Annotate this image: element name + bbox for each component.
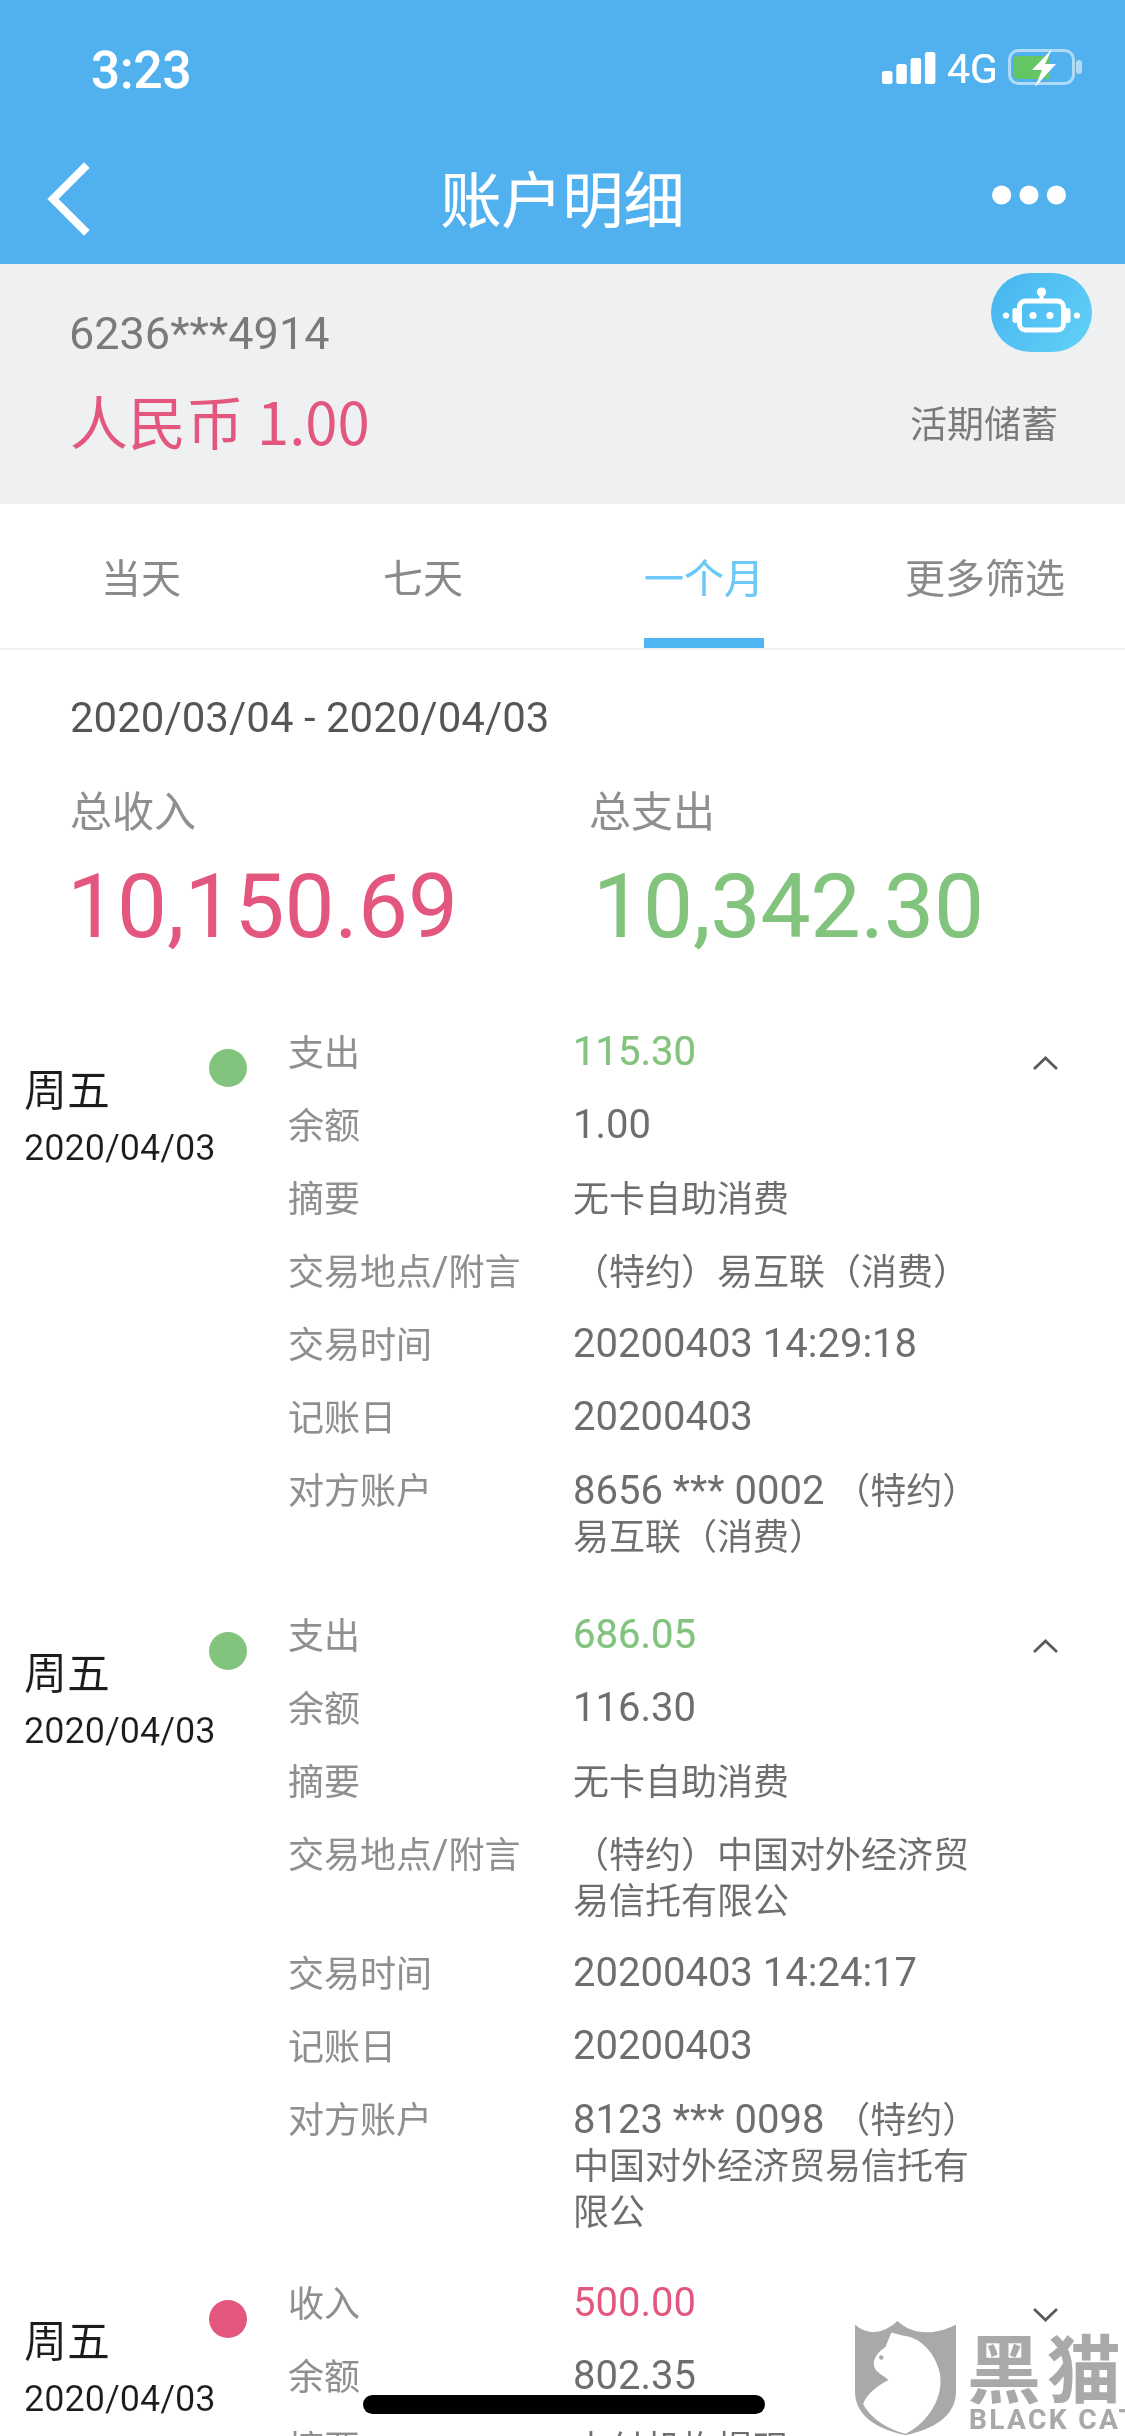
staticText: 支付机构提现 <box>573 2425 983 2436</box>
staticText: 七天 <box>383 547 463 605</box>
staticText: 交易时间 <box>288 1321 573 1367</box>
staticText: 支出 <box>288 1612 573 1658</box>
staticText: 支付机构提现 <box>573 2426 983 2432</box>
button[interactable]: 更多筛选 <box>844 504 1125 650</box>
staticText: 2020/03/04 - 2020/04/03 <box>70 693 550 742</box>
staticText: 黑猫 <box>967 2331 1125 2413</box>
staticText: 686.05 <box>573 1612 983 1658</box>
staticText: 10,150.69 <box>67 854 459 958</box>
staticText: 4G <box>947 45 998 93</box>
button[interactable]: Back <box>0 138 136 258</box>
staticText: 10,342.30 <box>593 854 985 958</box>
staticText: 摘要 <box>288 2425 573 2436</box>
staticText: 对方账户 <box>288 1467 573 1513</box>
staticText: 周五 <box>24 2318 110 2367</box>
staticText: 500.00 <box>573 2280 983 2326</box>
button[interactable]: 当天 <box>0 504 282 650</box>
staticText: 一个月 <box>644 547 764 605</box>
staticText: 20200403 14:29:18 <box>573 1321 983 1367</box>
staticText: 活期储蓄 <box>910 395 1058 449</box>
staticText: 802.35 <box>573 2353 983 2399</box>
staticText: 总收入 <box>70 778 197 839</box>
button[interactable]: 周五 <box>0 1006 1125 1563</box>
button[interactable]: 七天 <box>282 504 563 650</box>
staticText: （特约）中国对外经济贸易信托有限公 <box>573 1831 983 1923</box>
staticText: 交易地点/附言 <box>288 1248 573 1294</box>
button[interactable]: Assistant <box>991 273 1092 352</box>
staticText: 周五 <box>24 1067 110 1116</box>
button[interactable]: 一个月 <box>563 504 844 650</box>
staticText: 20200403 <box>573 2023 983 2069</box>
staticText: 2020/04/03 <box>24 2376 216 2420</box>
staticText: 人民币 1.00 <box>70 378 370 462</box>
staticText: 摘要 <box>288 1758 573 1804</box>
staticText: 对方账户 <box>288 2096 573 2142</box>
button[interactable]: 周五 <box>0 2257 1125 2436</box>
staticText: 116.30 <box>573 1685 983 1731</box>
staticText: BLACK CAT <box>969 2404 1125 2436</box>
staticText: 无卡自助消费 <box>573 1175 983 1221</box>
staticText: 记账日 <box>288 2023 573 2069</box>
staticText: 2020/04/03 <box>24 1708 216 1752</box>
staticText: 8656 *** 0002 （特约）易互联（消费） <box>573 1467 983 1559</box>
staticText: 收入 <box>288 2280 573 2326</box>
staticText: 交易地点/附言 <box>288 1831 573 1877</box>
staticText: 交易时间 <box>288 1950 573 1996</box>
staticText: 支出 <box>288 1029 573 1075</box>
button[interactable]: 周五 <box>0 1589 1125 2238</box>
staticText: 更多筛选 <box>905 547 1065 605</box>
staticText: 余额 <box>288 1685 573 1731</box>
staticText: （特约）易互联（消费） <box>573 1248 983 1294</box>
staticText: 总支出 <box>589 778 716 839</box>
staticText: 2020/04/03 <box>24 1125 216 1169</box>
staticText: 周五 <box>24 1650 110 1699</box>
staticText: 1.00 <box>573 1102 983 1148</box>
staticText: 无卡自助消费 <box>573 1758 983 1804</box>
staticText: 115.30 <box>573 1029 983 1075</box>
staticText: 20200403 <box>573 1394 983 1440</box>
staticText: 6236***4914 <box>69 307 330 360</box>
staticText: 摘要 <box>288 1175 573 1221</box>
staticText: 余额 <box>288 1102 573 1148</box>
staticText: 20200403 14:24:17 <box>573 1950 983 1996</box>
staticText: 记账日 <box>288 1394 573 1440</box>
button[interactable]: More options <box>973 139 1085 251</box>
staticText: 摘要 <box>288 2426 573 2432</box>
staticText: 当天 <box>101 547 181 605</box>
staticText: 3:23 <box>91 41 192 101</box>
staticText: 8123 *** 0098 （特约）中国对外经济贸易信托有限公 <box>573 2096 983 2234</box>
staticText: 账户明细 <box>0 152 1125 240</box>
staticText: 余额 <box>288 2353 573 2399</box>
